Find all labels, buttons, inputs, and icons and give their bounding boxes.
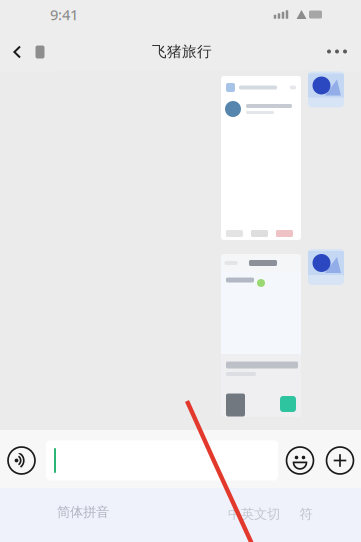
button[interactable]: 简体拼音 (54, 503, 112, 521)
button[interactable]: 符 (296, 505, 316, 523)
staticText: 飞猪旅行 (152, 42, 212, 60)
button[interactable]: Voice message (1, 440, 41, 480)
staticText: 9:41 (50, 5, 78, 24)
button[interactable]: More options (321, 440, 359, 480)
staticText: 简体拼音 (57, 504, 109, 520)
button[interactable]: Back (0, 32, 54, 72)
staticText: 中英文切 (228, 506, 280, 522)
button[interactable]: More (315, 31, 359, 71)
button[interactable]: 中英文切 (223, 505, 285, 523)
staticText: 符 (299, 506, 312, 522)
button[interactable]: Emoji (281, 440, 319, 480)
button[interactable] (46, 440, 278, 480)
